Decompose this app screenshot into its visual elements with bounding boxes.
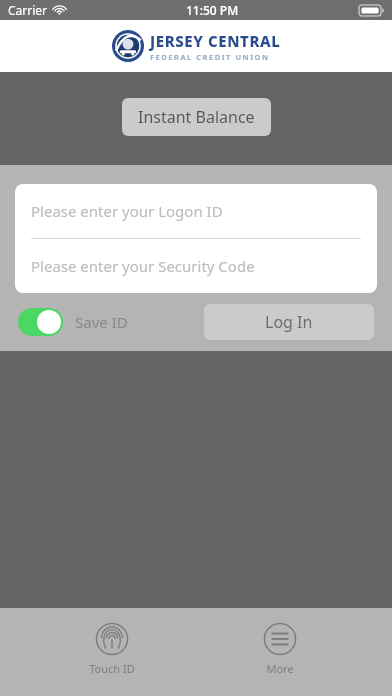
button[interactable]: More: [225, 620, 335, 678]
staticText: Save ID: [75, 312, 128, 332]
staticText: Carrier: [8, 2, 48, 18]
staticText: Please enter your Logon ID: [31, 201, 223, 221]
staticText: 11:50 PM: [186, 2, 239, 18]
staticText: Instant Balance: [138, 106, 255, 128]
button[interactable]: Please enter your Security Code: [15, 239, 377, 293]
button[interactable]: Touch ID: [57, 620, 167, 678]
button[interactable]: Please enter your Logon ID: [15, 184, 377, 238]
staticText: FEDERAL CREDIT UNION: [150, 52, 270, 62]
staticText: Log In: [265, 311, 313, 333]
button[interactable]: Instant Balance: [122, 98, 271, 136]
staticText: Touch ID: [89, 661, 135, 676]
button[interactable]: Save ID toggle, on: [18, 308, 63, 336]
other: More: [263, 622, 297, 656]
staticText: More: [266, 661, 294, 676]
button[interactable]: Log In: [204, 304, 374, 340]
staticText: JERSEY CENTRAL: [150, 31, 281, 51]
staticText: Please enter your Security Code: [31, 256, 255, 276]
other: Touch ID: [95, 622, 129, 656]
